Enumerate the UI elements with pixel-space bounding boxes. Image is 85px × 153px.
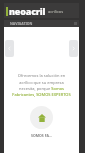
staticText: SOMOS FA...: [31, 133, 52, 138]
button[interactable]: Somos fabricantes: [30, 106, 53, 129]
button[interactable]: Previous slide: [5, 40, 14, 57]
staticText: Ofrecemos la solución en acrílico que su…: [11, 73, 72, 97]
staticText: NAVIGATION: [10, 21, 33, 26]
button[interactable]: neoacril: [4, 3, 79, 18]
staticText: acrilicos: [48, 9, 64, 14]
staticText: neoacril: [9, 5, 46, 17]
button[interactable]: NAVIGATION: [4, 20, 79, 27]
button[interactable]: Next slide: [69, 40, 78, 57]
